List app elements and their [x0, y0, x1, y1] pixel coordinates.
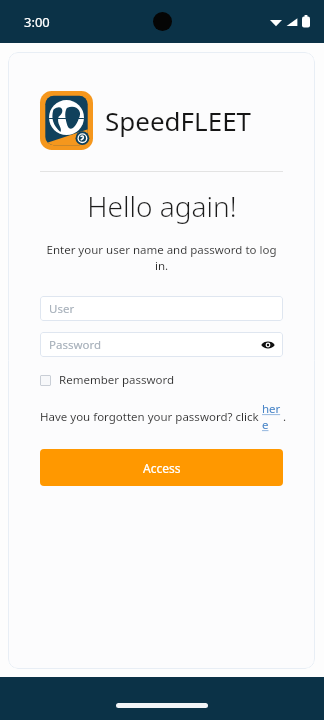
staticText: Hello again! [87, 187, 237, 225]
staticText: 3:00 [24, 13, 50, 31]
button[interactable]: Password [40, 332, 283, 357]
staticText: Enter your user name and password to log… [40, 242, 283, 274]
button[interactable]: Remember password [40, 372, 283, 388]
staticText: Password [49, 337, 102, 353]
button[interactable]: Show password [261, 338, 275, 352]
button[interactable]: here [262, 401, 283, 433]
staticText: Access [143, 460, 181, 476]
staticText: Have you forgotten your password? click [40, 409, 262, 425]
staticText: SpeedFLEET [105, 103, 252, 138]
staticText: User [49, 301, 75, 317]
staticText: Remember password [59, 372, 175, 388]
button[interactable]: User [40, 296, 283, 321]
button[interactable]: Access [40, 449, 283, 486]
